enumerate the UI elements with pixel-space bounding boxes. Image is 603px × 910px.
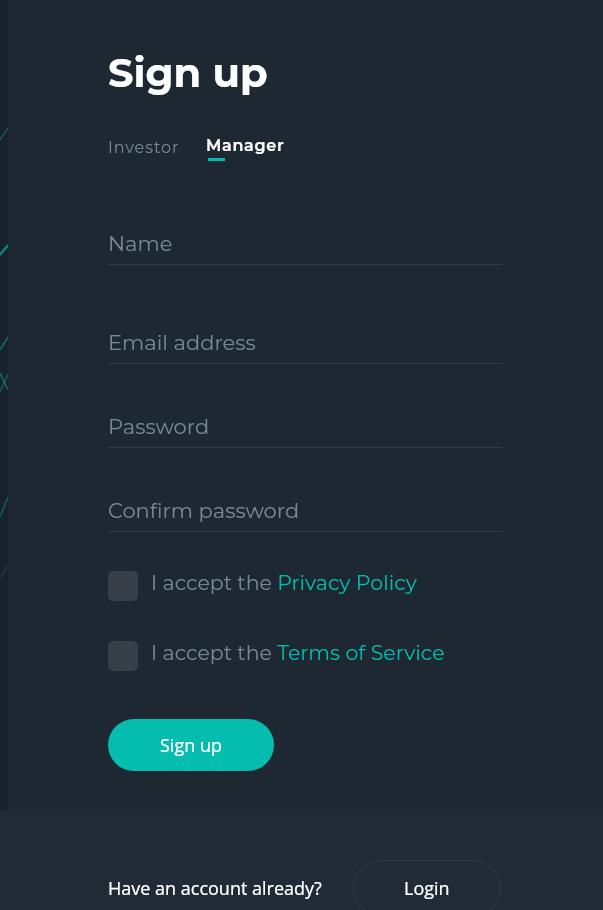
staticText: Confirm password [108,498,300,524]
staticText: Manager [206,136,285,156]
button[interactable]: Login [353,860,501,910]
button[interactable]: Sign up [108,719,274,771]
staticText: I accept the Privacy Policy [151,570,417,595]
staticText: Have an account already? [108,876,322,901]
staticText: Password [108,414,210,440]
staticText: Investor [108,138,180,158]
button[interactable]: I accept the Terms of Service [108,641,445,671]
staticText: Email address [108,330,256,356]
staticText: Login [404,876,450,901]
staticText: I accept the Terms of Service [151,640,445,665]
staticText: Sign up [108,48,268,97]
button[interactable]: I accept the Privacy Policy [108,571,417,601]
button[interactable]: Manager [204,132,287,160]
button[interactable]: Investor [106,134,182,162]
staticText: Sign up [160,733,222,758]
staticText: Name [108,231,173,257]
